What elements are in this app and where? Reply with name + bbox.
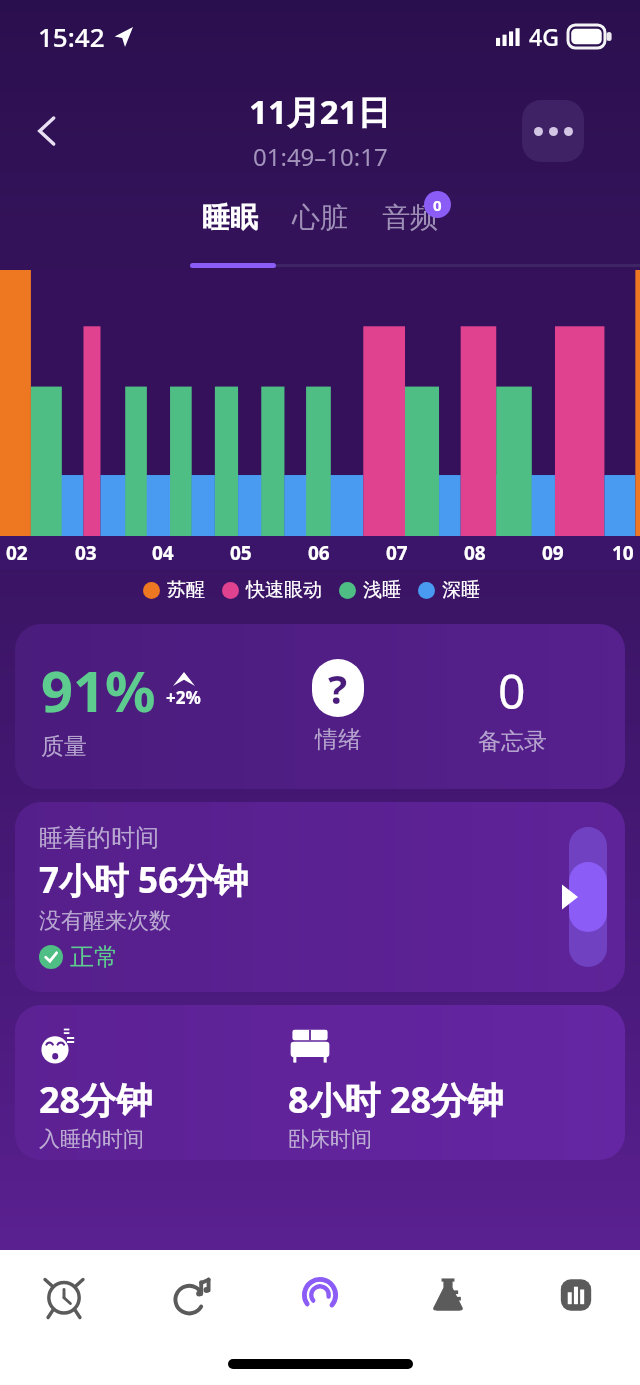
button[interactable]: 睡眠	[192, 194, 268, 241]
staticText: 0	[433, 195, 442, 215]
staticText: 10	[612, 540, 634, 566]
staticText: 01:49–10:17	[253, 140, 388, 173]
staticText: 睡着的时间	[39, 823, 159, 853]
staticText: 8小时 28分钟	[288, 1075, 504, 1124]
button[interactable]: Back	[18, 101, 78, 161]
staticText: 质量	[41, 732, 87, 761]
staticText: 浅睡	[363, 578, 401, 602]
staticText: 苏醒	[167, 578, 205, 602]
button[interactable]: 91%	[15, 624, 625, 789]
staticText: 28分钟	[39, 1075, 153, 1124]
staticText: ?	[328, 661, 348, 715]
staticText: 4G	[529, 21, 559, 52]
button[interactable]: Stats	[512, 1250, 640, 1340]
staticText: 05	[230, 540, 252, 566]
button[interactable]: Alarm	[0, 1250, 128, 1340]
staticText: 07	[386, 540, 408, 566]
staticText: 04	[152, 540, 174, 566]
staticText: 0	[498, 658, 526, 723]
staticText: 备忘录	[478, 727, 547, 756]
staticText: 卧床时间	[288, 1126, 372, 1152]
staticText: 11月21日	[249, 89, 391, 134]
button[interactable]: Sounds	[128, 1250, 256, 1340]
staticText: 情绪	[315, 725, 361, 754]
button[interactable]: Lab	[384, 1250, 512, 1340]
staticText: 睡眠	[202, 200, 258, 235]
staticText: 入睡的时间	[39, 1126, 144, 1152]
button[interactable]: 睡着的时间	[15, 802, 625, 992]
staticText: 没有醒来次数	[39, 907, 171, 935]
staticText: 心脏	[292, 200, 348, 235]
staticText: +2%	[166, 686, 201, 709]
staticText: 音频	[382, 200, 438, 235]
button[interactable]: 28分钟	[15, 1005, 625, 1160]
staticText: 06	[308, 540, 330, 566]
staticText: 02	[6, 540, 28, 566]
button[interactable]: 11月21日	[249, 89, 391, 173]
staticText: 7小时 56分钟	[39, 856, 249, 904]
button[interactable]: More options	[522, 100, 584, 162]
button[interactable]: 心脏	[282, 194, 358, 241]
staticText: 深睡	[442, 578, 480, 602]
staticText: 快速眼动	[246, 578, 322, 602]
staticText: 03	[75, 540, 97, 566]
staticText: 15:42	[38, 19, 105, 54]
button[interactable]: Sleep	[256, 1250, 384, 1340]
staticText: 正常	[70, 942, 118, 972]
button[interactable]: 音频	[372, 194, 448, 241]
staticText: 09	[542, 540, 564, 566]
staticText: 08	[464, 540, 486, 566]
staticText: 91%	[41, 652, 156, 728]
